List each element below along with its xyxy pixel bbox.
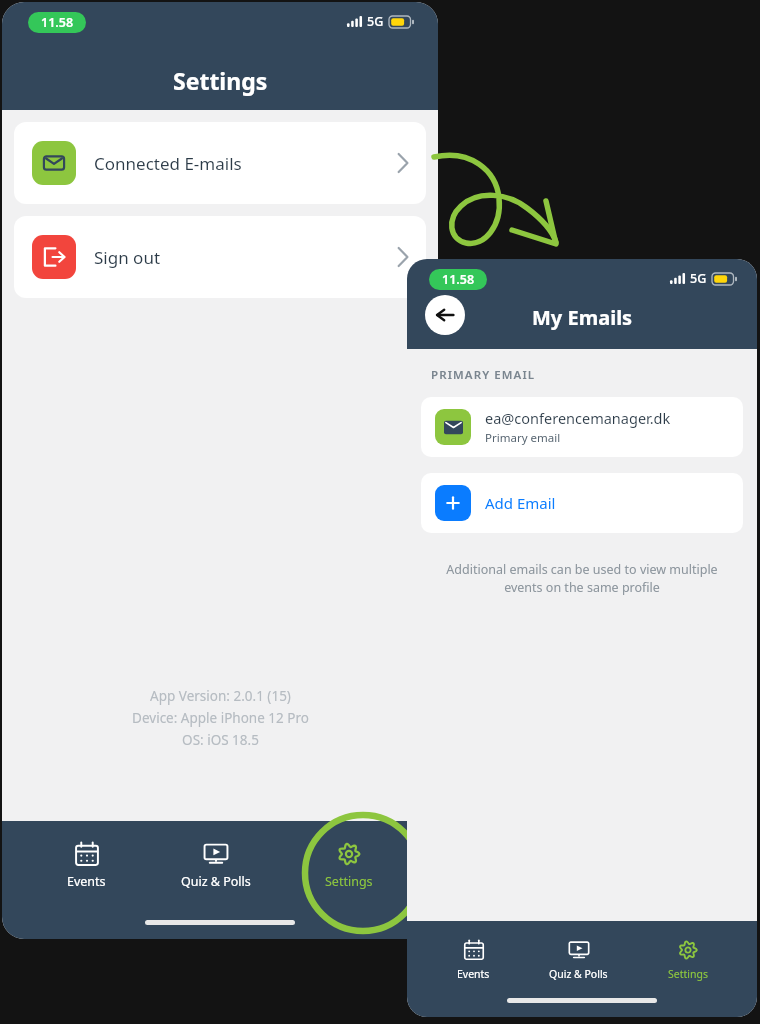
button[interactable]: Settings <box>315 837 383 894</box>
staticText: Events <box>457 967 490 981</box>
button[interactable]: Events <box>447 935 500 985</box>
staticText: Quiz & Polls <box>181 873 251 890</box>
staticText: Additional emails can be used to view mu… <box>431 561 733 596</box>
staticText: Settings <box>173 65 268 96</box>
button[interactable]: ea@conferencemanager.dk <box>421 397 743 457</box>
button[interactable]: Quiz & Polls <box>539 935 618 985</box>
staticText: App Version: 2.0.1 (15) <box>150 687 291 705</box>
staticText: Sign out <box>94 246 161 269</box>
staticText: Device: Apple iPhone 12 Pro <box>132 709 309 727</box>
button[interactable]: Quiz & Polls <box>171 837 261 894</box>
staticText: My Emails <box>532 304 633 331</box>
button[interactable]: Sign out <box>14 216 426 298</box>
staticText: Primary email <box>485 430 561 446</box>
button[interactable]: Events <box>57 837 116 894</box>
staticText: Settings <box>325 873 373 890</box>
button[interactable]: Connected E-mails <box>14 122 426 204</box>
staticText: OS: iOS 18.5 <box>182 731 259 749</box>
staticText: PRIMARY EMAIL <box>431 367 536 383</box>
staticText: Events <box>67 873 106 890</box>
button[interactable]: Add Email <box>421 473 743 533</box>
staticText: 11.58 <box>41 14 74 31</box>
staticText: 5G <box>367 13 384 30</box>
staticText: Add Email <box>485 493 556 513</box>
staticText: 5G <box>690 270 707 287</box>
staticText: ea@conferencemanager.dk <box>485 408 671 428</box>
staticText: 11.58 <box>442 271 475 288</box>
button[interactable]: Settings <box>658 935 718 985</box>
staticText: Settings <box>668 967 708 981</box>
button[interactable]: Back <box>425 295 465 335</box>
staticText: Quiz & Polls <box>549 967 608 981</box>
staticText: Connected E-mails <box>94 152 242 175</box>
